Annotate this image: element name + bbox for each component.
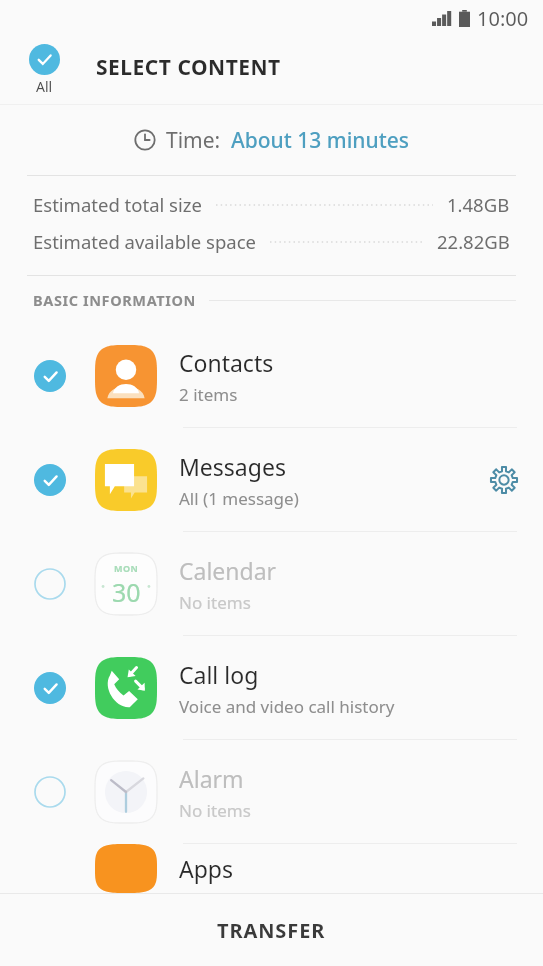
button[interactable]: Alarm xyxy=(0,740,543,844)
staticText: 1.48GB xyxy=(447,192,510,217)
button[interactable]: TRANSFER xyxy=(0,894,543,966)
staticText: 30 xyxy=(112,575,141,609)
staticText: Call log xyxy=(179,659,259,690)
staticText: 22.82GB xyxy=(437,229,510,254)
staticText: 2 items xyxy=(179,383,238,406)
staticText: MON xyxy=(114,562,139,574)
staticText: Calendar xyxy=(179,555,277,586)
staticText: Messages xyxy=(179,451,286,482)
staticText: Voice and video call history xyxy=(179,695,395,718)
staticText: No items xyxy=(179,799,251,822)
staticText: Alarm xyxy=(179,763,244,794)
staticText: Time: xyxy=(166,126,221,155)
staticText: SELECT CONTENT xyxy=(96,53,281,82)
button[interactable]: Messages xyxy=(0,428,543,532)
staticText: All (1 message) xyxy=(179,487,299,510)
button[interactable]: MON xyxy=(0,532,543,636)
staticText: Contacts xyxy=(179,347,274,378)
staticText: BASIC INFORMATION xyxy=(33,290,196,310)
staticText: No items xyxy=(179,591,251,614)
staticText: 10:00 xyxy=(477,5,529,32)
button[interactable]: Messages settings xyxy=(477,453,531,507)
button[interactable]: Apps xyxy=(0,844,543,893)
staticText: About 13 minutes xyxy=(231,126,409,155)
staticText: TRANSFER xyxy=(217,917,326,944)
staticText: All xyxy=(36,77,53,96)
button[interactable]: Contacts xyxy=(0,324,543,428)
staticText: Estimated total size xyxy=(33,192,202,217)
button[interactable]: Call log xyxy=(0,636,543,740)
button[interactable]: All xyxy=(26,41,63,99)
staticText: Apps xyxy=(179,853,234,884)
staticText: Estimated available space xyxy=(33,229,256,254)
